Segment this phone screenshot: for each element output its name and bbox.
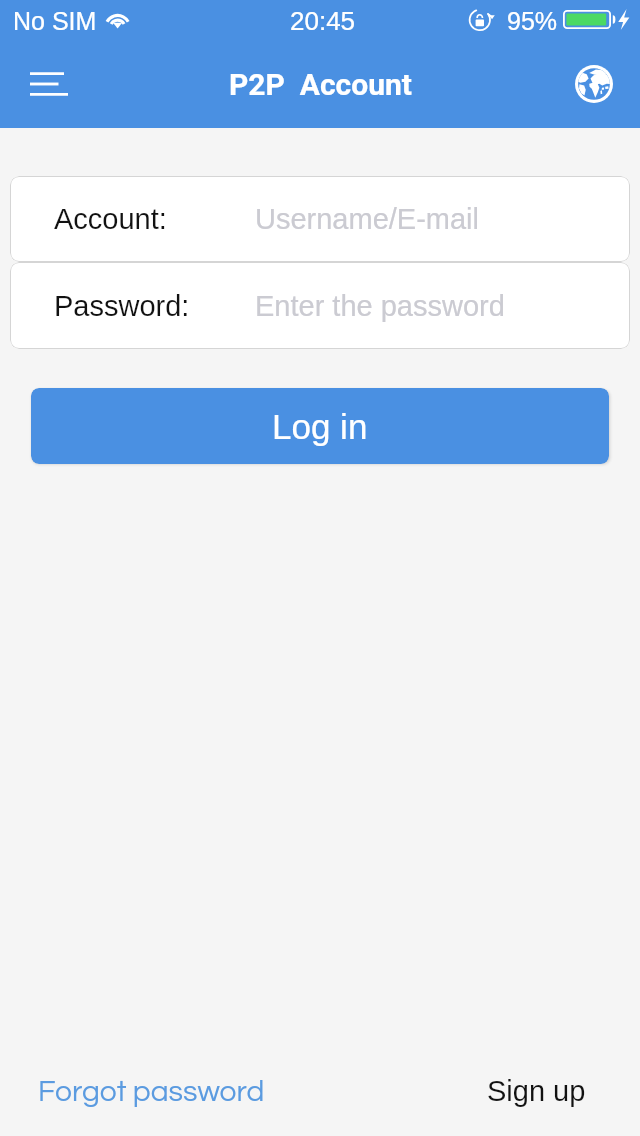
staticText: P2P Account	[229, 67, 412, 102]
button[interactable]: Sign up	[471, 1063, 602, 1119]
staticText: Username/E-mail	[255, 203, 479, 235]
button[interactable]: Log in	[31, 388, 609, 464]
button[interactable]: Language	[561, 51, 627, 117]
staticText: No SIM	[13, 7, 97, 35]
staticText: Forgot password	[38, 1076, 265, 1107]
staticText: Sign up	[487, 1075, 586, 1107]
staticText: 95%	[507, 7, 558, 35]
staticText: Password:	[54, 290, 190, 322]
staticText: Enter the password	[255, 290, 505, 322]
button[interactable]: Account:	[10, 176, 630, 262]
button[interactable]: Menu	[17, 53, 85, 115]
button[interactable]: Password:	[10, 262, 630, 349]
staticText: Log in	[272, 407, 368, 446]
staticText: Account:	[54, 203, 167, 235]
staticText: 20:45	[290, 6, 356, 35]
button[interactable]: Forgot password	[22, 1064, 281, 1119]
